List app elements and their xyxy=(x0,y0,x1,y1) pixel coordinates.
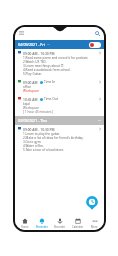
staticText: 03/09/2021 - Thu xyxy=(18,118,47,123)
button[interactable]: Toggle xyxy=(89,42,101,48)
staticText: 5.Take a tour of a bookstore. xyxy=(23,148,65,152)
staticText: Workspace xyxy=(23,106,39,110)
staticText: 10:45 AM xyxy=(23,97,38,101)
staticText: Calendar xyxy=(72,225,83,229)
staticText: 1.Learn to play the guitar. xyxy=(23,132,60,136)
staticText: office xyxy=(23,85,32,89)
staticText: 09:00 AM - 10:30 PM xyxy=(23,127,55,131)
staticText: 09:00 AM - 10:30 PM xyxy=(23,51,55,55)
staticText: [ 1 hour 45 minutes ] xyxy=(23,110,54,114)
button[interactable]: 09:00 AM - 10:30 PM xyxy=(15,49,104,78)
staticText: Recorder xyxy=(54,225,66,229)
button[interactable]: 03/09/2021 - Thu xyxy=(15,116,104,125)
button[interactable]: Calendar xyxy=(69,217,86,230)
button[interactable]: Menu xyxy=(19,31,24,36)
button[interactable]: Search xyxy=(95,31,100,36)
button[interactable]: 04/09/2021 - Fri xyxy=(15,40,104,49)
staticText: Reminder xyxy=(36,225,48,229)
staticText: More xyxy=(91,225,98,229)
button[interactable]: 09:00 AM - 10:30 PM xyxy=(15,125,104,154)
staticText: ··· xyxy=(47,43,50,47)
staticText: 1.Read some poem and record it for podca… xyxy=(23,56,89,60)
staticText: Home xyxy=(21,225,29,229)
staticText: 09:00 AM xyxy=(23,80,38,84)
button[interactable]: Reminder xyxy=(33,217,50,230)
button[interactable]: Home xyxy=(16,217,33,230)
staticText: 2.Watch UX TED. xyxy=(23,60,47,64)
staticText: 04/09/2021 - Fri xyxy=(18,42,45,47)
staticText: 3.Learn new things about IT. xyxy=(23,64,65,68)
staticText: Workspace xyxy=(23,89,39,93)
staticText: 4.Read a audiobook from school. xyxy=(23,68,71,72)
staticText: 3.Go to gym. xyxy=(23,140,42,144)
button[interactable]: Add reminder xyxy=(85,196,99,210)
staticText: 2.Make a list of ideas for friend's birt… xyxy=(23,136,84,140)
button[interactable]: More xyxy=(86,217,103,230)
staticText: Time Out xyxy=(44,97,58,101)
button[interactable]: Recorder xyxy=(51,217,68,230)
staticText: kajal xyxy=(23,102,30,106)
staticText: 4.Water a film. xyxy=(23,144,44,148)
button[interactable]: 09:00 AM xyxy=(15,78,104,95)
staticText: Time In xyxy=(44,80,56,84)
staticText: 5.Play Guitar. xyxy=(23,72,42,76)
button[interactable]: 10:45 AM xyxy=(15,95,104,116)
staticText: ··· xyxy=(98,119,101,123)
